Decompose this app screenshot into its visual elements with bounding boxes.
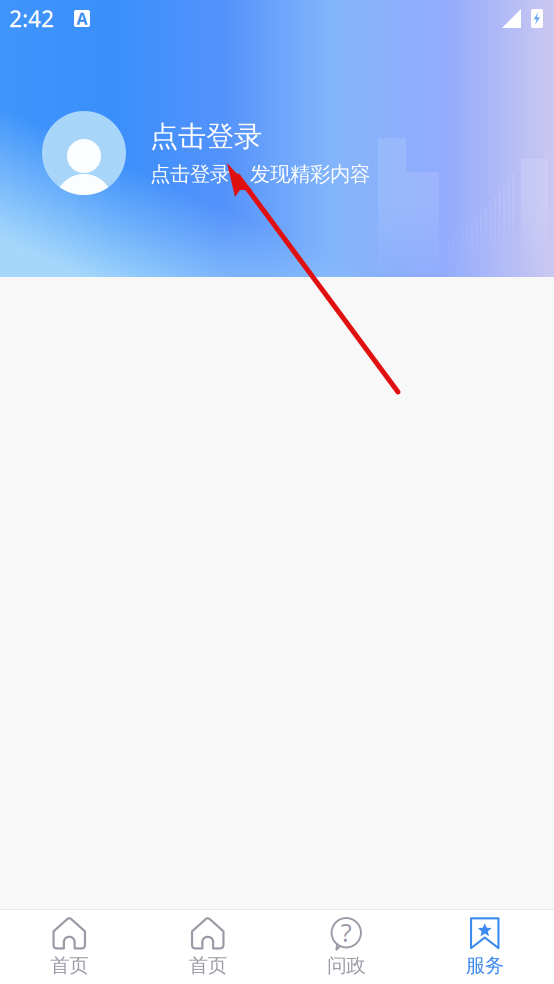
button[interactable]: 首页 [138,910,277,984]
staticText: 点击登录，发现精彩内容 [150,161,370,187]
staticText: A [76,8,87,29]
staticText: ? [341,915,352,949]
staticText: 2:42 [9,3,54,33]
staticText: 首页 [50,953,88,978]
staticText: 服务 [466,953,504,978]
staticText: 点击登录 [150,119,262,154]
button[interactable]: 首页 [0,910,138,984]
button[interactable]: ? [277,910,415,984]
staticText: 首页 [189,953,227,978]
button[interactable]: 服务 [415,910,554,984]
staticText: 问政 [327,953,365,978]
